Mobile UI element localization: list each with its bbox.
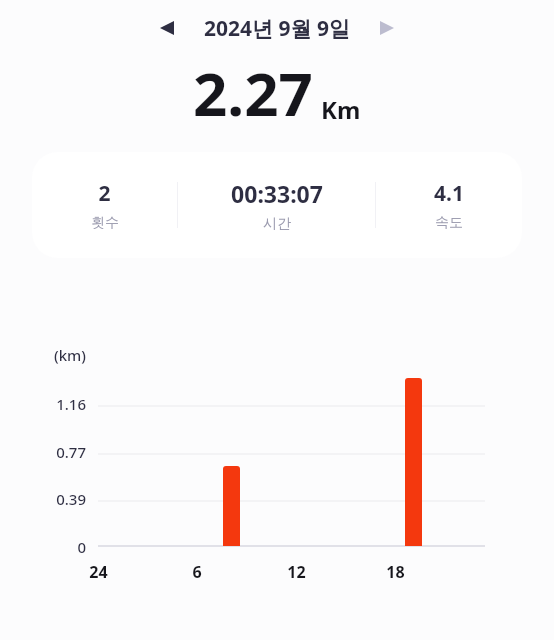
staticText: 12 [287,561,306,583]
button[interactable]: Next day [370,11,404,45]
staticText: 1.16 [56,394,86,414]
staticText: 시간 [263,215,291,233]
staticText: 0 [77,537,86,557]
staticText: 4.1 [434,179,464,208]
staticText: 0.77 [56,442,86,462]
button[interactable]: 4.1 [376,179,522,232]
button[interactable]: Previous day [150,11,184,45]
staticText: 횟수 [91,214,119,232]
staticText: 속도 [435,214,463,232]
staticText: (km) [54,345,86,365]
staticText: 0.39 [56,489,86,509]
staticText: 18 [386,561,405,583]
button[interactable]: 00:33:07 [178,178,375,233]
staticText: 2024년 9월 9일 [204,14,350,43]
staticText: 24 [89,561,108,583]
staticText: 00:33:07 [231,178,323,209]
button[interactable]: 2 [32,152,522,258]
button[interactable]: 2 [32,179,177,232]
staticText: Km [321,93,361,126]
staticText: 2 [98,179,111,208]
staticText: 2.27 [193,52,313,134]
staticText: 6 [192,561,202,583]
